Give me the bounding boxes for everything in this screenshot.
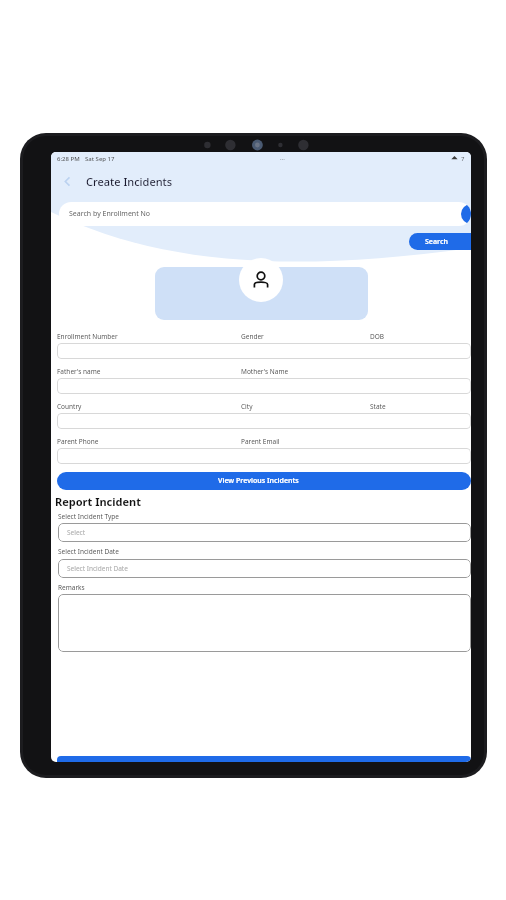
staticText: 7 xyxy=(461,155,465,163)
staticText: State xyxy=(370,402,386,411)
button[interactable] xyxy=(57,448,471,464)
staticText: Select Incident Date xyxy=(58,547,119,556)
staticText: Select xyxy=(67,528,86,537)
staticText: Gender xyxy=(241,332,264,341)
staticText: Parent Phone xyxy=(57,437,99,446)
staticText: Country xyxy=(57,402,82,411)
staticText: 6:28 PM xyxy=(57,155,80,163)
button[interactable]: View Previous Incidents xyxy=(57,472,471,490)
staticText: City xyxy=(241,402,253,411)
button[interactable]: Profile photo xyxy=(239,258,283,302)
staticText: Create Incidents xyxy=(86,174,173,189)
staticText: Mother's Name xyxy=(241,367,289,376)
button[interactable]: Back xyxy=(56,170,78,192)
staticText: Sat Sep 17 xyxy=(85,155,115,163)
button[interactable] xyxy=(57,756,471,762)
staticText: Remarks xyxy=(58,583,85,592)
button[interactable]: Select xyxy=(58,523,471,542)
button[interactable] xyxy=(58,594,471,652)
staticText: View Previous Incidents xyxy=(218,476,299,486)
button[interactable] xyxy=(57,343,471,359)
staticText: DOB xyxy=(370,332,385,341)
staticText: Father's name xyxy=(57,367,101,376)
button[interactable]: Search by Enrollment No xyxy=(59,202,471,226)
staticText: Select Incident Date xyxy=(67,564,128,573)
button[interactable] xyxy=(155,267,368,320)
staticText: Search xyxy=(425,237,448,247)
staticText: Report Incident xyxy=(55,494,141,509)
staticText: ··· xyxy=(280,155,285,163)
staticText: Enrollment Number xyxy=(57,332,118,341)
staticText: Select Incident Type xyxy=(58,512,119,521)
button[interactable] xyxy=(57,413,471,429)
staticText: Parent Email xyxy=(241,437,280,446)
button[interactable]: Search xyxy=(409,233,471,250)
button[interactable] xyxy=(57,378,471,394)
button[interactable]: Select Incident Date xyxy=(58,559,471,578)
staticText: Search by Enrollment No xyxy=(69,209,151,219)
button[interactable]: Search xyxy=(461,204,471,224)
